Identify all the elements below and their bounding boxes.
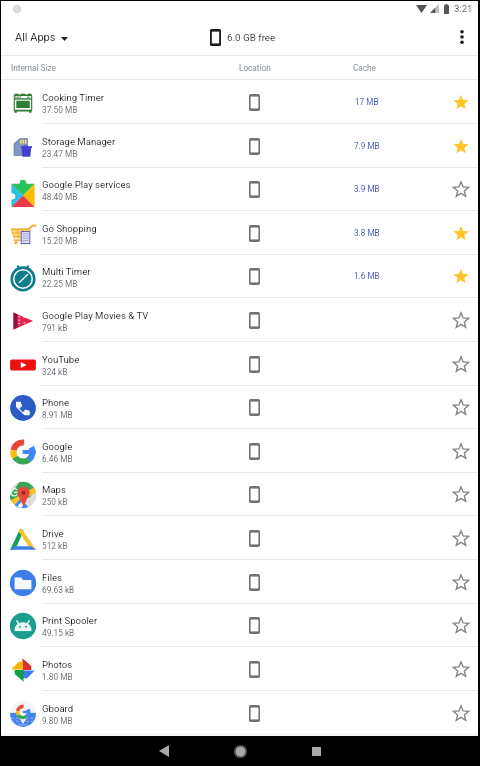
staticText: 1.80 MB <box>42 672 73 682</box>
staticText: 49.15 kB <box>42 628 75 638</box>
button[interactable]: Go Shopping <box>0 211 480 255</box>
button[interactable]: Star <box>446 436 476 466</box>
button[interactable]: Star <box>446 523 476 553</box>
staticText: 9.80 MB <box>42 716 73 726</box>
staticText: 250 kB <box>42 497 68 507</box>
staticText: Photos <box>42 659 73 670</box>
button[interactable]: Storage Manager <box>0 124 480 168</box>
staticText: Google Play services <box>42 179 131 190</box>
staticText: 23.47 MB <box>42 149 78 159</box>
button[interactable]: YouTube <box>0 342 480 386</box>
button[interactable]: Star <box>446 654 476 684</box>
button[interactable]: Unstar <box>446 218 476 248</box>
button[interactable]: Home <box>216 736 264 766</box>
staticText: Drive <box>42 528 64 539</box>
button[interactable]: Photos <box>0 647 480 691</box>
button[interactable]: Star <box>446 567 476 597</box>
button[interactable]: Star <box>446 479 476 509</box>
button[interactable]: Unstar <box>446 87 476 117</box>
staticText: Phone <box>42 397 70 408</box>
staticText: 3:21 <box>454 3 473 14</box>
staticText: 3.8 MB <box>354 228 380 238</box>
button[interactable]: Google <box>0 429 480 473</box>
staticText: 22.25 MB <box>42 279 78 289</box>
button[interactable]: All Apps <box>0 25 78 50</box>
staticText: Storage Manager <box>42 136 116 147</box>
staticText: Google Play Movies & TV <box>42 310 149 321</box>
button[interactable]: Star <box>446 349 476 379</box>
button[interactable]: Phone <box>0 385 480 429</box>
staticText: 37.50 MB <box>42 105 78 115</box>
staticText: Print Spooler <box>42 615 98 626</box>
button[interactable]: Gboard <box>0 691 480 735</box>
button[interactable]: Files <box>0 560 480 604</box>
staticText: 324 kB <box>42 367 68 377</box>
staticText: 512 kB <box>42 541 68 551</box>
staticText: 791 kB <box>42 323 68 333</box>
staticText: Cooking Timer <box>42 92 105 103</box>
staticText: 17 MB <box>355 97 379 107</box>
staticText: 48.40 MB <box>42 192 78 202</box>
staticText: 8.91 MB <box>42 410 73 420</box>
staticText: Gboard <box>42 703 74 714</box>
staticText: Maps <box>42 484 66 495</box>
button[interactable]: Star <box>446 610 476 640</box>
button[interactable]: Back <box>140 736 188 766</box>
button[interactable]: Drive <box>0 516 480 560</box>
button[interactable]: Cooking Timer <box>0 80 480 124</box>
staticText: All Apps <box>15 31 56 44</box>
button[interactable]: Print Spooler <box>0 603 480 647</box>
button[interactable]: Unstar <box>446 261 476 291</box>
staticText: YouTube <box>42 354 80 365</box>
button[interactable]: More options <box>444 19 480 55</box>
staticText: Multi Timer <box>42 266 91 277</box>
staticText: Location <box>239 63 271 73</box>
staticText: Go Shopping <box>42 223 97 234</box>
staticText: 6.0 GB free <box>227 32 276 43</box>
button[interactable]: Recents <box>292 736 340 766</box>
button[interactable]: Star <box>446 174 476 204</box>
button[interactable]: Star <box>446 392 476 422</box>
staticText: Files <box>42 572 63 583</box>
staticText: 6.46 MB <box>42 454 73 464</box>
staticText: 3.9 MB <box>354 184 380 194</box>
button[interactable]: Star <box>446 305 476 335</box>
staticText: 69.63 kB <box>42 585 75 595</box>
button[interactable]: Maps <box>0 472 480 516</box>
button[interactable]: Unstar <box>446 131 476 161</box>
staticText: Internal Size <box>11 63 56 73</box>
staticText: 7.9 MB <box>354 141 380 151</box>
button[interactable]: Google Play Movies & TV <box>0 298 480 342</box>
button[interactable]: Google Play services <box>0 167 480 211</box>
button[interactable]: Star <box>446 698 476 728</box>
staticText: 15.20 MB <box>42 236 78 246</box>
staticText: Cache <box>353 63 376 73</box>
button[interactable]: Multi Timer <box>0 254 480 298</box>
staticText: 1.6 MB <box>354 271 380 281</box>
staticText: Google <box>42 441 73 452</box>
